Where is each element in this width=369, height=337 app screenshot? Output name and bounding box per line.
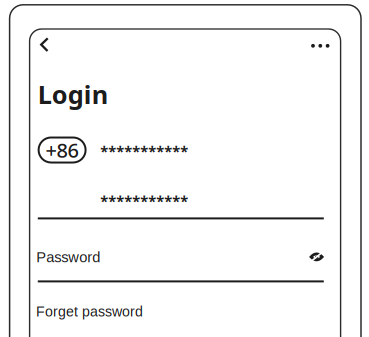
button[interactable]: Back <box>35 32 65 64</box>
button[interactable]: Forget password <box>36 298 146 326</box>
staticText: Forget password <box>36 304 143 320</box>
staticText: Login <box>38 77 108 111</box>
staticText: Password <box>36 249 100 265</box>
staticText: +86 <box>46 136 79 164</box>
staticText: *********** <box>100 191 188 211</box>
button[interactable]: Show password <box>304 245 330 269</box>
button[interactable]: +86 <box>39 137 86 162</box>
button[interactable]: More options <box>307 30 339 62</box>
staticText: *********** <box>100 141 188 161</box>
